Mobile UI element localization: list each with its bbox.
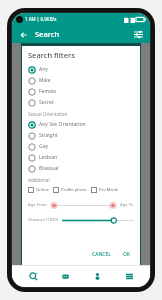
staticText: Additional: [28, 177, 50, 183]
staticText: Gay: [39, 143, 48, 150]
button[interactable]: Discover: [22, 265, 44, 287]
staticText: Profile photo: [61, 187, 87, 193]
button[interactable]: Straight: [28, 130, 134, 141]
button[interactable]: Any Sex Orientation: [28, 119, 134, 130]
button[interactable]: Any: [28, 64, 134, 75]
button[interactable]: Distance (1030): [28, 215, 134, 225]
staticText: 1 AM | 6.9KB/s: [25, 16, 57, 22]
staticText: Sexual Orientation: [28, 111, 68, 117]
staticText: Secret: [39, 99, 54, 106]
staticText: OK: [123, 251, 131, 258]
button[interactable]: Online: [28, 185, 49, 195]
staticText: Distance (1030): [28, 217, 59, 223]
button[interactable]: Pro Mode: [91, 185, 119, 195]
button[interactable]: Secret: [28, 97, 134, 108]
staticText: Age To: [120, 202, 134, 208]
button[interactable]: Male: [28, 75, 134, 86]
staticText: Age From: [28, 202, 47, 208]
button[interactable]: CANCEL: [89, 249, 114, 260]
staticText: CANCEL: [92, 251, 111, 258]
staticText: Pro Mode: [99, 187, 119, 193]
button[interactable]: Menu: [118, 265, 140, 287]
staticText: Search: [35, 29, 60, 39]
staticText: Male: [39, 77, 51, 84]
button[interactable]: Bisexual: [28, 163, 134, 174]
staticText: Online: [36, 187, 49, 193]
button[interactable]: Messages: [54, 265, 76, 287]
button[interactable]: Profile photo: [53, 185, 87, 195]
button[interactable]: Age From: [28, 200, 134, 210]
button[interactable]: Profile: [86, 265, 108, 287]
button[interactable]: Female: [28, 86, 134, 97]
staticText: Any Sex Orientation: [39, 121, 86, 128]
button[interactable]: Lesbian: [28, 152, 134, 163]
button[interactable]: OK: [120, 249, 134, 260]
button[interactable]: Back: [17, 28, 30, 41]
staticText: Any: [39, 66, 48, 73]
button[interactable]: Filters: [131, 27, 145, 41]
staticText: Lesbian: [39, 154, 58, 161]
staticText: Bisexual: [39, 165, 59, 172]
staticText: Straight: [39, 132, 58, 139]
staticText: Female: [39, 88, 57, 95]
staticText: Search filters: [28, 50, 75, 60]
button[interactable]: Gay: [28, 141, 134, 152]
